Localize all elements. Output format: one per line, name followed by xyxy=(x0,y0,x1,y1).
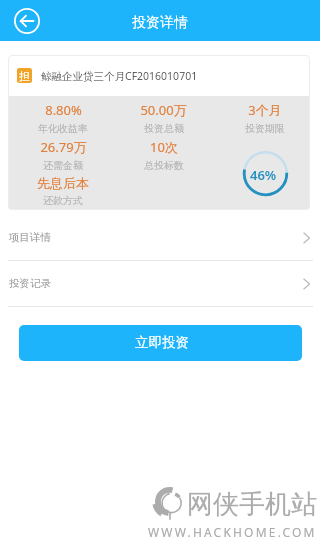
button[interactable]: 项目详情 xyxy=(0,215,320,260)
staticText: WWW.HACKHOME.COM xyxy=(148,524,317,540)
staticText: 8.80% xyxy=(45,101,82,119)
staticText: 网侠手机站 xyxy=(187,488,317,521)
staticText: 10次 xyxy=(150,138,178,156)
staticText: 先息后本 xyxy=(37,175,89,191)
staticText: 立即投资 xyxy=(135,334,189,351)
staticText: 50.00万 xyxy=(140,101,187,119)
staticText: 46% xyxy=(250,166,277,184)
staticText: 担 xyxy=(19,69,30,83)
staticText: 投资详情 xyxy=(132,14,188,32)
staticText: 还需金额 xyxy=(43,159,83,172)
staticText: 总投标数 xyxy=(144,159,184,172)
button[interactable]: Back xyxy=(14,8,40,34)
staticText: 投资期限 xyxy=(245,122,285,135)
staticText: 26.79万 xyxy=(40,138,87,156)
staticText: 年化收益率 xyxy=(38,122,88,135)
button[interactable]: 立即投资 xyxy=(19,325,302,361)
staticText: 项目详情 xyxy=(9,231,51,244)
button[interactable]: 投资记录 xyxy=(0,261,320,306)
staticText: 3个月 xyxy=(248,101,282,119)
staticText: 鲸融企业贷三个月CF2016010701 xyxy=(41,69,198,83)
staticText: 投资总额 xyxy=(144,122,184,135)
staticText: 投资记录 xyxy=(9,277,51,290)
staticText: 还款方式 xyxy=(43,194,83,207)
